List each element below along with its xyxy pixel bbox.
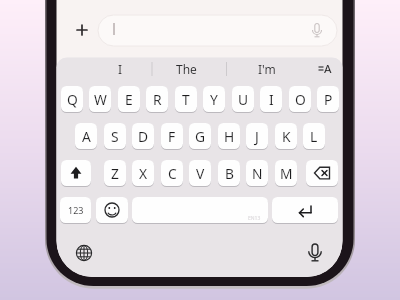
staticText: E [125,90,133,109]
staticText: O [295,90,306,109]
button[interactable]: D [132,123,154,149]
button[interactable] [272,197,338,223]
staticText: H [224,127,235,146]
staticText: W [94,90,107,109]
button[interactable]: M [275,160,297,186]
button[interactable]: L [303,123,325,149]
button[interactable]: F [161,123,183,149]
button[interactable]: R [146,86,168,112]
staticText: X [139,164,148,183]
button[interactable]: E [118,86,140,112]
staticText: T [182,90,190,109]
button[interactable]: O [289,86,311,112]
staticText: K [282,127,291,146]
button[interactable]: N [246,160,268,186]
button[interactable]: I'm [237,59,297,79]
button[interactable]: The [156,59,216,79]
button[interactable]: A [298,59,358,79]
button[interactable]: Q [61,86,83,112]
button[interactable] [306,160,338,186]
button[interactable]: W [89,86,111,112]
staticText: L [310,127,318,146]
staticText: Q [67,90,78,109]
staticText: P [324,90,333,109]
button[interactable]: P [317,86,339,112]
staticText: R [153,90,162,109]
button[interactable]: H [218,123,240,149]
button[interactable]: G [189,123,211,149]
staticText: J [255,127,259,146]
staticText: 123 [68,204,84,216]
button[interactable] [96,197,128,223]
staticText: M [280,164,293,183]
staticText: F [168,127,176,146]
button[interactable]: I [90,59,150,79]
staticText: U [238,90,249,109]
button[interactable] [61,160,91,186]
button[interactable]: J [246,123,268,149]
button[interactable]: B [218,160,240,186]
button[interactable]: K [275,123,297,149]
button[interactable]: S [104,123,126,149]
staticText: A [82,127,91,146]
button[interactable]: I [260,86,282,112]
staticText: The [176,61,197,77]
staticText: S [111,127,119,146]
button[interactable]: U [232,86,254,112]
staticText: I [269,90,274,109]
button[interactable]: 123 [60,197,91,223]
staticText: N [252,164,263,183]
button[interactable]: Y [203,86,225,112]
staticText: I'm [258,61,276,77]
button[interactable]: V [189,160,211,186]
staticText: D [138,127,149,146]
button[interactable]: A [75,123,97,149]
staticText: A [324,61,332,77]
staticText: Y [210,90,218,109]
button[interactable]: C [161,160,183,186]
button[interactable] [132,197,268,223]
button[interactable]: X [132,160,154,186]
button[interactable]: Z [104,160,126,186]
button[interactable]: T [175,86,197,112]
staticText: B [225,164,234,183]
staticText: V [196,164,205,183]
staticText: Z [111,164,119,183]
staticText: EN13 [248,215,261,222]
staticText: G [195,127,206,146]
staticText: I [118,61,123,77]
staticText: C [168,164,177,183]
